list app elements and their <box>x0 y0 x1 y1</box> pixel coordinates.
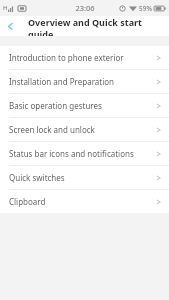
button[interactable]: Back <box>0 16 20 36</box>
staticText: Installation and Preparation <box>9 76 156 87</box>
staticText: Overview and Quick start guide <box>28 16 169 36</box>
button[interactable]: Quick switches <box>0 166 169 189</box>
staticText: 59% <box>139 4 152 13</box>
staticText: Introduction to phone exterior <box>9 52 156 63</box>
staticText: H <box>3 4 8 12</box>
staticText: Basic operation gestures <box>9 100 156 111</box>
staticText: Status bar icons and notifications <box>9 148 156 159</box>
button[interactable]: Screen lock and unlock <box>0 118 169 141</box>
button[interactable]: Basic operation gestures <box>0 94 169 117</box>
staticText: Quick switches <box>9 172 156 183</box>
button[interactable]: Installation and Preparation <box>0 70 169 93</box>
button[interactable]: Introduction to phone exterior <box>0 46 169 69</box>
staticText: Screen lock and unlock <box>9 124 156 135</box>
staticText: Clipboard <box>9 196 156 207</box>
button[interactable]: Clipboard <box>0 190 169 213</box>
button[interactable]: Status bar icons and notifications <box>0 142 169 165</box>
staticText: 23:06 <box>75 3 95 13</box>
